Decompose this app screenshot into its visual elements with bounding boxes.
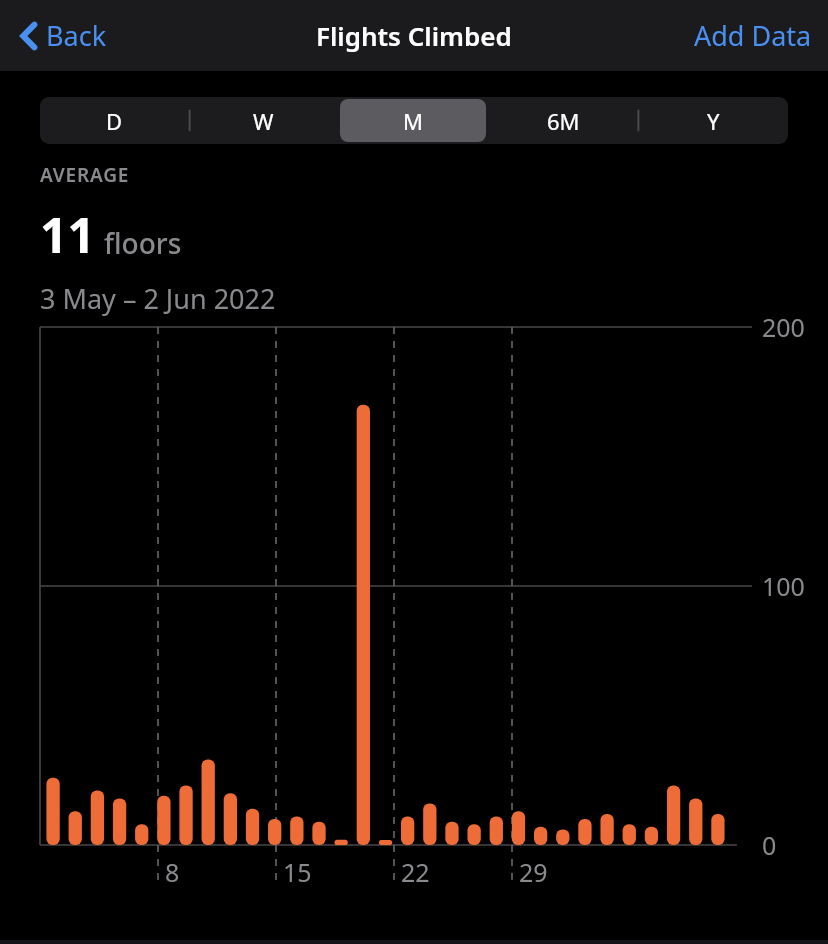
button[interactable]: Add Data bbox=[678, 7, 828, 64]
button[interactable]: Y bbox=[640, 99, 786, 142]
staticText: 3 May – 2 Jun 2022 bbox=[40, 280, 276, 317]
button[interactable]: 6M bbox=[490, 99, 636, 142]
staticText: Back bbox=[46, 17, 107, 54]
staticText: 8 bbox=[165, 855, 180, 889]
staticText: W bbox=[253, 106, 274, 136]
staticText: 29 bbox=[519, 855, 548, 889]
staticText: 6M bbox=[547, 106, 580, 136]
staticText: 100 bbox=[762, 569, 805, 603]
staticText: 22 bbox=[401, 855, 430, 889]
staticText: Flights Climbed bbox=[316, 18, 512, 53]
staticText: Add Data bbox=[694, 17, 812, 54]
other: Back bbox=[20, 21, 38, 51]
staticText: 15 bbox=[283, 855, 312, 889]
staticText: M bbox=[403, 106, 423, 136]
staticText: floors bbox=[104, 224, 182, 262]
button[interactable]: W bbox=[191, 99, 336, 142]
button[interactable]: M bbox=[340, 99, 486, 142]
staticText: AVERAGE bbox=[40, 162, 130, 188]
staticText: 0 bbox=[762, 828, 777, 862]
button[interactable]: D bbox=[42, 99, 187, 142]
staticText: Y bbox=[707, 106, 720, 136]
button[interactable]: Back bbox=[0, 9, 121, 62]
staticText: 11 bbox=[40, 202, 95, 267]
staticText: D bbox=[106, 106, 123, 136]
staticText: 200 bbox=[762, 310, 805, 344]
